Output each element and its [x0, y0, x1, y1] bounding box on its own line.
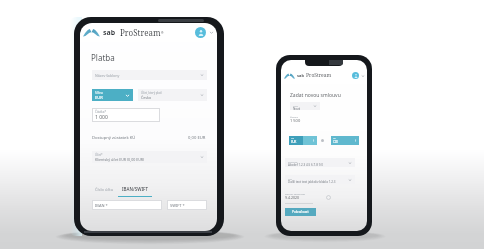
button[interactable]: Číslo účtu — [95, 183, 115, 195]
staticText: Zadat novou smlouvu — [290, 92, 341, 99]
staticText: ProStream — [306, 72, 332, 79]
staticText: Platba — [91, 52, 115, 63]
staticText: Typ* — [293, 104, 299, 107]
staticText: Účet, který platí — [141, 91, 162, 95]
staticText: EUR — [291, 140, 297, 144]
button[interactable]: Název šablony — [92, 70, 207, 80]
staticText: sab — [297, 73, 304, 78]
button[interactable]: Částka* — [92, 108, 160, 122]
staticText: CZK — [333, 140, 339, 144]
staticText: EUR — [95, 95, 103, 100]
staticText: 1 500 — [290, 118, 301, 123]
staticText: Pokračovat — [292, 210, 309, 214]
button[interactable]: Typ* — [290, 102, 320, 110]
button[interactable]: Datum splatnosti — [285, 192, 313, 204]
button[interactable]: Do — [331, 136, 359, 145]
staticText: sab — [103, 28, 116, 38]
staticText: Částka — [290, 115, 298, 118]
staticText: Dostupný zůstatek KÚ — [92, 135, 136, 141]
button[interactable]: Od — [289, 136, 317, 145]
staticText: ProStream — [120, 27, 161, 38]
staticText: IBAN/SWIFT — [122, 186, 148, 192]
staticText: Klientský účet EUR (0,00 EUR) — [95, 157, 145, 162]
button[interactable]: Account — [352, 72, 359, 79]
staticText: Česko — [141, 95, 152, 100]
staticText: IBAN * — [95, 203, 108, 208]
staticText: Datum splatnosti — [285, 192, 306, 195]
button[interactable]: Účet, který platí — [138, 89, 207, 101]
button[interactable]: Účet* — [92, 151, 207, 163]
staticText: Název šablony — [95, 73, 120, 78]
staticText: Číslo účtu — [95, 187, 114, 192]
staticText: Účet* — [95, 153, 103, 157]
staticText: ® — [161, 31, 164, 35]
staticText: Od — [291, 137, 295, 140]
staticText: 9.4.2020 — [285, 195, 299, 200]
button[interactable]: Typ — [285, 175, 355, 184]
staticText: Do — [333, 137, 336, 140]
staticText: Částka* — [95, 110, 107, 114]
button[interactable]: Měna — [92, 89, 133, 101]
button[interactable]: Pokračovat — [285, 208, 316, 216]
button[interactable]: Smlouva — [285, 158, 355, 167]
staticText: 0,00 EUR — [188, 135, 206, 141]
staticText: Smlouva — [288, 160, 298, 163]
staticText: Měna — [95, 91, 103, 95]
button[interactable]: IBAN/SWIFT — [118, 183, 152, 195]
staticText: 1 000 — [95, 114, 108, 121]
staticText: SWIFT * — [170, 203, 185, 208]
button[interactable]: SWIFT * — [167, 200, 207, 210]
button[interactable]: Account — [195, 27, 206, 38]
staticText: Další text text jakkoliv blabla 1.2.3 — [288, 180, 336, 184]
staticText: Typ — [288, 177, 292, 180]
button[interactable]: IBAN * — [92, 200, 162, 210]
staticText: Abcdef 1.2.3 4.5 6.7.8 9.0 — [288, 163, 323, 167]
staticText: Nová — [293, 107, 301, 111]
